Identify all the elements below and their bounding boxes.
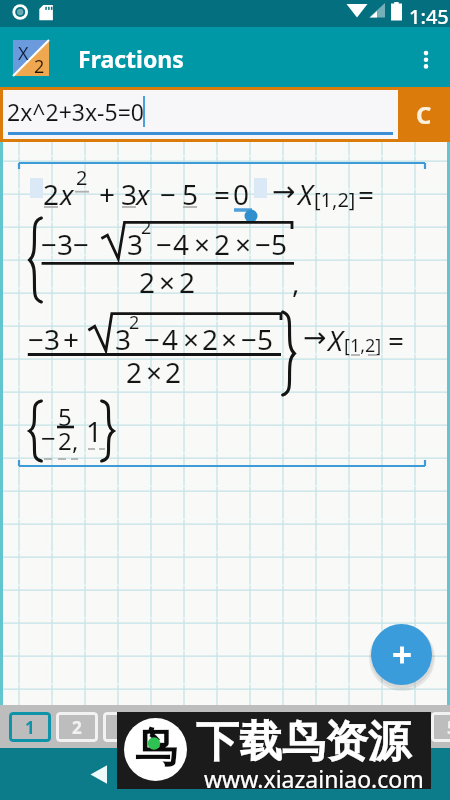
staticText: 1 <box>25 716 35 739</box>
staticText: 2 <box>129 310 140 335</box>
button[interactable]: 1 <box>9 712 51 742</box>
button[interactable]: 5 <box>431 712 450 742</box>
staticText: 4 <box>162 320 179 358</box>
button[interactable]: C <box>398 87 450 142</box>
staticText: 5 <box>58 400 72 433</box>
button[interactable]: App icon <box>13 40 49 76</box>
button[interactable]: More options <box>402 33 450 81</box>
staticText: −3 <box>41 225 74 263</box>
staticText: 2 <box>58 424 72 457</box>
staticText: × <box>183 320 200 358</box>
staticText: = <box>358 175 375 213</box>
staticText: , <box>292 263 300 301</box>
staticText: 5 <box>182 175 199 213</box>
staticText: −5 <box>241 320 274 358</box>
staticText: X <box>328 321 343 359</box>
staticText: → <box>303 321 327 354</box>
staticText: 1:45 <box>409 3 449 30</box>
button[interactable]: Add <box>371 624 432 685</box>
staticText: × <box>146 353 163 391</box>
staticText: X <box>18 41 29 66</box>
staticText: , <box>72 424 79 457</box>
staticText: 3 <box>115 320 132 358</box>
staticText: −5 <box>255 225 288 263</box>
staticText: − <box>160 175 177 213</box>
staticText: 鸟 <box>135 722 177 775</box>
staticText: −3 <box>28 320 61 358</box>
staticText: 0 <box>233 175 250 213</box>
staticText: 2 <box>126 353 143 391</box>
staticText: [1,2] <box>314 186 356 213</box>
button[interactable]: 2 <box>56 712 98 742</box>
staticText: 4 <box>173 225 190 263</box>
staticText: [1,2] <box>344 333 382 358</box>
staticText: 2 <box>72 716 82 739</box>
staticText: 2 <box>214 225 231 263</box>
button[interactable]: Back <box>79 755 119 795</box>
staticText: × <box>221 320 238 358</box>
staticText: × <box>235 225 252 263</box>
staticText: × <box>194 225 211 263</box>
staticText: − <box>41 420 56 455</box>
staticText: 2 <box>202 320 219 358</box>
button[interactable]: 2x^2+3x-5=0 <box>3 90 398 139</box>
staticText: 2 <box>76 164 88 191</box>
staticText: 2 <box>141 215 152 240</box>
staticText: = <box>214 175 231 213</box>
staticText: + <box>63 320 80 358</box>
staticText: = <box>388 321 405 359</box>
button[interactable]: 3 <box>103 712 145 742</box>
staticText: 5 <box>447 716 450 739</box>
staticText: − <box>144 320 161 358</box>
staticText: Fractions <box>78 43 184 74</box>
staticText: 2 <box>34 54 45 79</box>
staticText: 下载鸟资源 <box>196 715 411 769</box>
staticText: 2 <box>179 263 196 301</box>
staticText: 2 <box>139 263 156 301</box>
staticText: 3 <box>119 716 129 739</box>
staticText: − <box>156 225 173 263</box>
staticText: 2 <box>165 353 182 391</box>
staticText: www.xiazainiao.com <box>204 763 424 794</box>
staticText: x <box>60 175 74 213</box>
staticText: − <box>73 225 90 263</box>
staticText: 2 <box>43 175 60 213</box>
staticText: × <box>159 263 176 301</box>
staticText: → <box>272 175 296 208</box>
staticText: 3 <box>127 225 144 263</box>
staticText: + <box>99 175 116 213</box>
staticText: 2x^2+3x-5=0 <box>7 96 144 127</box>
staticText: C <box>416 98 432 131</box>
staticText: x <box>136 175 150 213</box>
staticText: 1 <box>86 412 103 450</box>
staticText: X <box>298 175 313 213</box>
staticText: 3 <box>121 175 138 213</box>
